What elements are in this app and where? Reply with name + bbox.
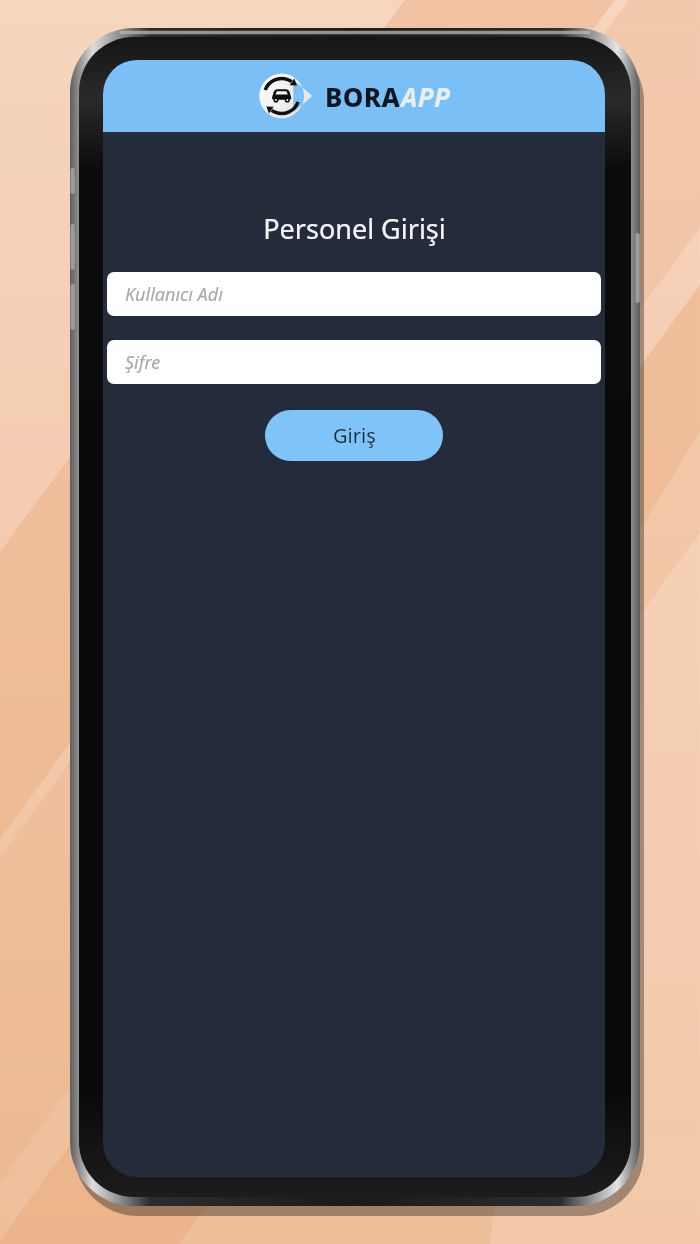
staticText: Giriş bbox=[333, 422, 376, 449]
staticText: Personel Girişi bbox=[263, 210, 446, 247]
button[interactable]: Kullanıcı Adı bbox=[107, 272, 601, 316]
staticText: APP bbox=[401, 79, 451, 114]
staticText: Şifre bbox=[125, 350, 161, 375]
staticText: Kullanıcı Adı bbox=[125, 282, 223, 307]
staticText: BORA bbox=[325, 79, 401, 114]
other: BORA APP logo bbox=[257, 68, 313, 124]
button[interactable]: Giriş bbox=[265, 410, 443, 461]
button[interactable]: Şifre bbox=[107, 340, 601, 384]
